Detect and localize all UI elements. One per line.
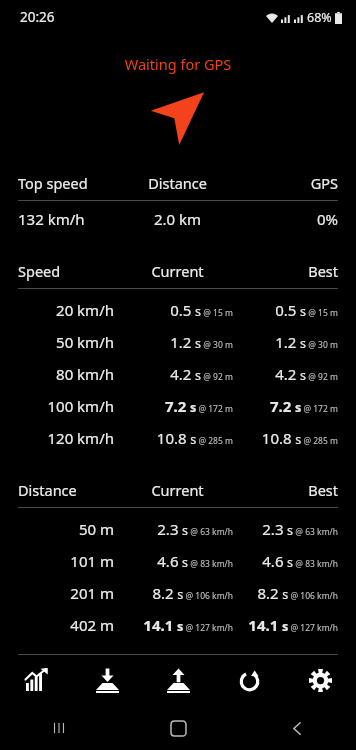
staticText: Top speed <box>18 173 119 193</box>
button[interactable]: Home <box>150 708 206 748</box>
staticText: 8.2 s @ 106 km/h <box>233 583 338 603</box>
staticText: 80 km/h <box>18 364 114 384</box>
button[interactable]: 80 km/h <box>0 358 356 390</box>
staticText: 7.2 s @ 172 m <box>114 396 233 416</box>
staticText: 1.2 s @ 30 m <box>233 332 338 352</box>
button[interactable]: Back <box>269 708 325 748</box>
staticText: 8.2 s @ 106 km/h <box>114 583 233 603</box>
button[interactable]: 120 km/h <box>0 422 356 454</box>
staticText: 10.8 s @ 285 m <box>233 428 338 448</box>
staticText: 4.6 s @ 83 km/h <box>233 551 338 571</box>
staticText: 1.2 s @ 30 m <box>114 332 233 352</box>
staticText: 50 m <box>18 519 114 539</box>
staticText: 4.2 s @ 92 m <box>233 364 338 384</box>
button[interactable]: Reset <box>220 657 278 703</box>
button[interactable]: 20 km/h <box>0 294 356 326</box>
button[interactable]: Recents <box>31 708 87 748</box>
button[interactable]: 201 m <box>0 577 356 609</box>
staticText: 402 m <box>18 615 114 635</box>
staticText: 100 km/h <box>18 396 114 416</box>
staticText: Waiting for GPS <box>0 54 356 74</box>
staticText: 0.5 s @ 15 m <box>114 300 233 320</box>
button[interactable]: 100 km/h <box>0 390 356 422</box>
staticText: 2.3 s @ 63 km/h <box>233 519 338 539</box>
button[interactable]: Settings <box>291 657 349 703</box>
staticText: 4.6 s @ 83 km/h <box>114 551 233 571</box>
staticText: 0% <box>236 209 338 229</box>
staticText: 14.1 s @ 127 km/h <box>114 615 233 635</box>
button[interactable]: 50 m <box>0 513 356 545</box>
button[interactable]: Statistics <box>7 657 65 703</box>
staticText: 20:26 <box>20 8 55 26</box>
button[interactable]: Import <box>78 657 136 703</box>
staticText: 120 km/h <box>18 428 114 448</box>
button[interactable]: 132 km/h <box>0 209 356 229</box>
staticText: Current <box>119 261 236 281</box>
staticText: 50 km/h <box>18 332 114 352</box>
button[interactable]: Export <box>149 657 207 703</box>
staticText: 201 m <box>18 583 114 603</box>
staticText: Best <box>236 480 338 500</box>
staticText: 7.2 s @ 172 m <box>233 396 338 416</box>
staticText: Distance <box>119 173 236 193</box>
staticText: 10.8 s @ 285 m <box>114 428 233 448</box>
staticText: 2.0 km <box>119 209 236 229</box>
staticText: Speed <box>18 261 119 281</box>
staticText: 132 km/h <box>18 209 119 229</box>
staticText: Distance <box>18 480 119 500</box>
staticText: 0.5 s @ 15 m <box>233 300 338 320</box>
staticText: 4.2 s @ 92 m <box>114 364 233 384</box>
staticText: 20 km/h <box>18 300 114 320</box>
button[interactable]: 101 m <box>0 545 356 577</box>
button[interactable]: 402 m <box>0 609 356 641</box>
staticText: 101 m <box>18 551 114 571</box>
staticText: 2.3 s @ 63 km/h <box>114 519 233 539</box>
button[interactable]: 50 km/h <box>0 326 356 358</box>
staticText: Current <box>119 480 236 500</box>
staticText: 68% <box>307 9 332 26</box>
staticText: GPS <box>236 173 338 193</box>
staticText: Best <box>236 261 338 281</box>
staticText: 14.1 s @ 127 km/h <box>233 615 338 635</box>
